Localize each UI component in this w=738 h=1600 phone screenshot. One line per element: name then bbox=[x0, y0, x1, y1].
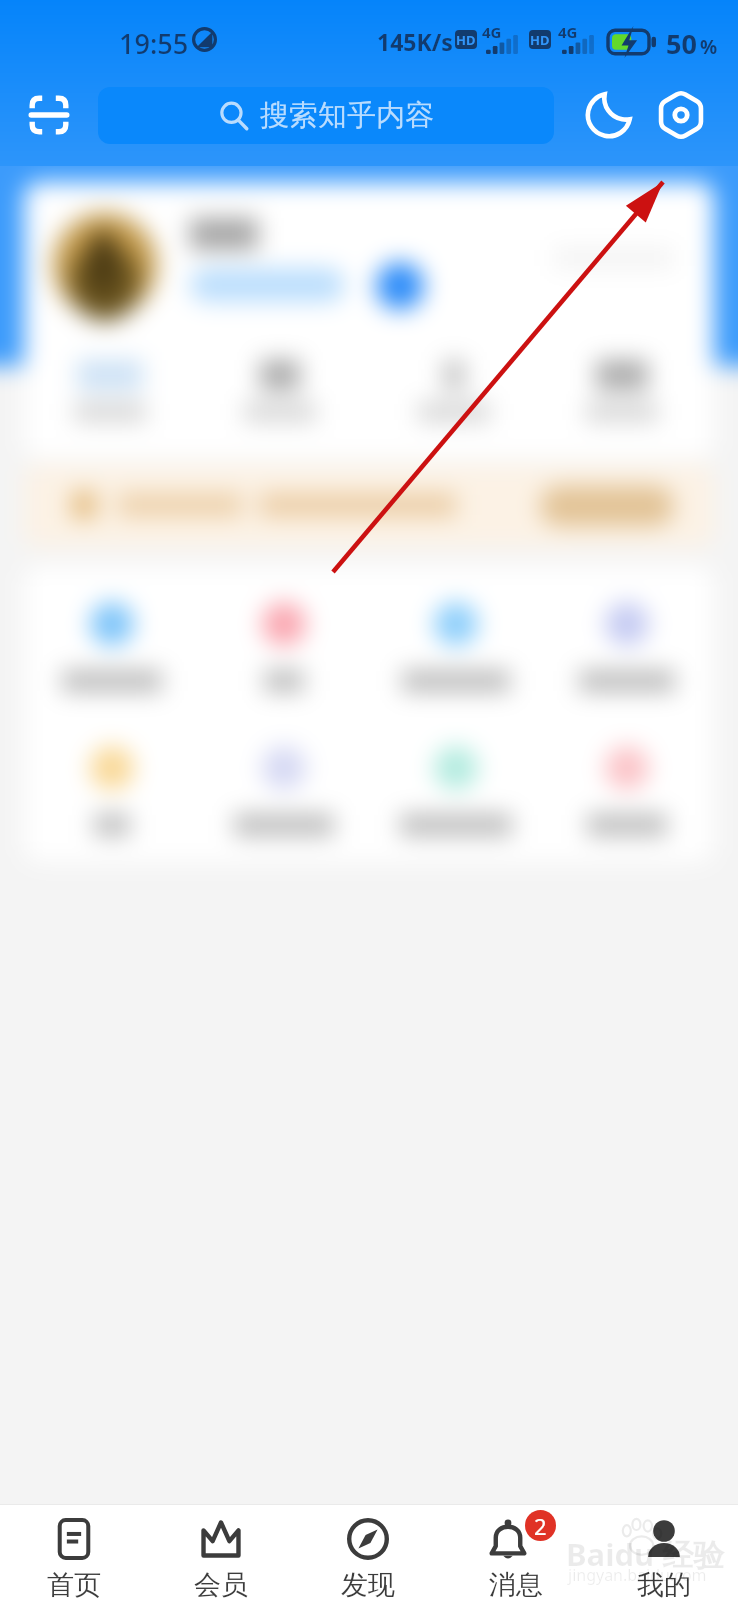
staticText: jingyan.baidu.com bbox=[568, 1564, 707, 1586]
button[interactable]: Scan QR code bbox=[18, 84, 80, 146]
staticText: 会员 bbox=[194, 1568, 248, 1600]
staticText: 19:55 bbox=[119, 25, 189, 62]
button[interactable]: 会员 bbox=[147, 1505, 294, 1600]
button[interactable]: Dark mode bbox=[578, 84, 640, 146]
staticText: 消息 bbox=[489, 1568, 543, 1600]
staticText: 我的 bbox=[637, 1568, 691, 1600]
button[interactable]: Settings bbox=[650, 84, 712, 146]
staticText: 50 bbox=[666, 25, 697, 62]
staticText: 发现 bbox=[341, 1568, 395, 1600]
staticText: 2 bbox=[534, 1511, 547, 1541]
button[interactable]: 我的 bbox=[590, 1505, 738, 1600]
staticText: 首页 bbox=[47, 1568, 101, 1600]
staticText: HD bbox=[530, 31, 550, 49]
button[interactable]: 发现 bbox=[294, 1505, 442, 1600]
staticText: HD bbox=[456, 31, 476, 49]
button[interactable]: 2 bbox=[442, 1505, 590, 1600]
staticText: 4G bbox=[558, 22, 578, 42]
staticText: Baidu 经验 bbox=[566, 1533, 725, 1575]
staticText: 4G bbox=[482, 22, 502, 42]
staticText: 145K/s bbox=[377, 26, 453, 57]
staticText: % bbox=[700, 34, 718, 60]
button[interactable]: 首页 bbox=[0, 1505, 147, 1600]
staticText: 搜索知乎内容 bbox=[260, 97, 434, 134]
button[interactable]: 搜索知乎内容 bbox=[98, 87, 554, 144]
